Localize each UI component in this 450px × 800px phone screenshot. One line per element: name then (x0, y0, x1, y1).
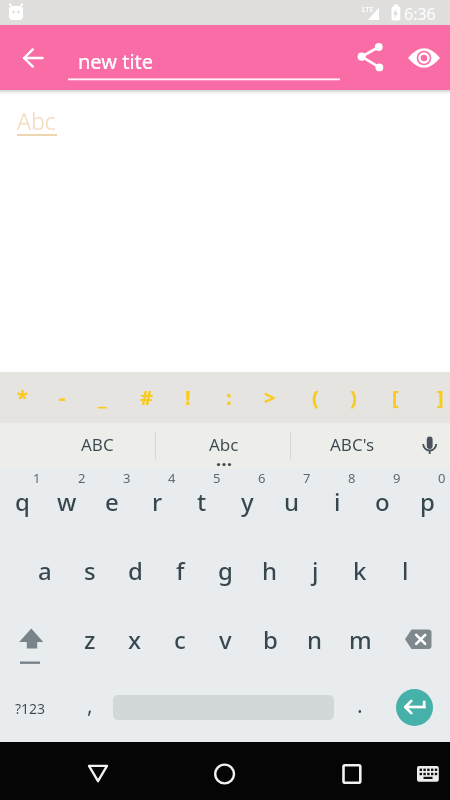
staticText: Abc (209, 433, 239, 456)
staticText: w (57, 485, 77, 518)
staticText: c (174, 623, 186, 656)
staticText: 0 (438, 469, 446, 487)
staticText: g (218, 554, 233, 587)
staticText: m (349, 623, 372, 656)
staticText: ?123 (15, 699, 46, 718)
staticText: o (375, 485, 390, 518)
staticText: v (219, 623, 232, 656)
staticText: 6:36 (404, 3, 436, 25)
staticText: ABC's (330, 433, 375, 456)
staticText: p (420, 485, 435, 518)
staticText: h (262, 554, 278, 587)
staticText: s (84, 554, 96, 587)
staticText: j (312, 554, 319, 587)
staticText: # (140, 384, 153, 411)
staticText: u (284, 485, 300, 518)
staticText: z (84, 623, 96, 656)
staticText: 6 (258, 469, 266, 487)
staticText: t (197, 485, 207, 518)
staticText: b (263, 623, 278, 656)
staticText: > (264, 384, 276, 411)
staticText: a (38, 554, 52, 587)
staticText: - (59, 384, 66, 411)
staticText: * (17, 384, 28, 411)
staticText: i (334, 485, 341, 518)
staticText: l (402, 554, 409, 587)
staticText: 1 (33, 469, 41, 487)
staticText: ABC (81, 433, 114, 456)
staticText: . (357, 691, 363, 720)
staticText: y (241, 485, 254, 518)
staticText: ) (350, 384, 357, 411)
staticText: : (226, 384, 232, 411)
staticText: x (128, 623, 142, 656)
staticText: ( (312, 384, 319, 411)
staticText: f (176, 554, 185, 587)
staticText: 9 (393, 469, 401, 487)
staticText: 5 (213, 469, 221, 487)
staticText: [ (392, 384, 399, 411)
staticText: 8 (348, 469, 356, 487)
staticText: 7 (303, 469, 311, 487)
staticText: ! (185, 384, 191, 411)
staticText: LTE (362, 5, 374, 15)
staticText: _ (98, 384, 107, 411)
staticText: 2 (78, 469, 86, 487)
staticText: e (105, 485, 119, 518)
staticText: new tite (78, 48, 154, 75)
staticText: r (152, 485, 163, 518)
staticText: n (307, 623, 323, 656)
staticText: ] (437, 384, 444, 411)
staticText: 3 (123, 469, 131, 487)
staticText: d (128, 554, 143, 587)
staticText: Abc (17, 105, 56, 136)
staticText: 4 (168, 469, 176, 487)
staticText: q (15, 485, 30, 518)
staticText: , (87, 691, 93, 720)
staticText: k (353, 554, 367, 587)
